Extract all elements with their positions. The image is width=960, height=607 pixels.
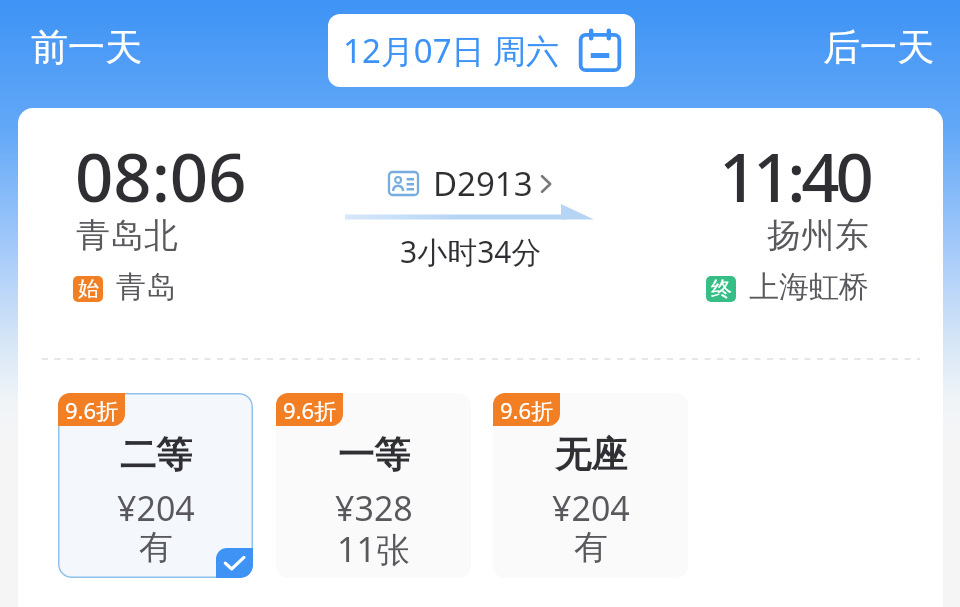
button[interactable]: 无座 [493, 393, 688, 578]
staticText: 08:06 [75, 130, 247, 221]
staticText: 9.6折 [500, 395, 554, 425]
button[interactable]: D2913 [388, 161, 553, 206]
staticText: 终 [711, 276, 732, 302]
button[interactable]: 12月07日 周六 [328, 14, 635, 87]
staticText: 11张 [337, 526, 410, 572]
staticText: 后一天 [823, 24, 934, 71]
staticText: 一等 [338, 432, 410, 477]
staticText: 9.6折 [283, 395, 337, 425]
staticText: 3小时34分 [400, 231, 542, 272]
staticText: 11:40 [719, 130, 870, 221]
staticText: 12月07日 周六 [343, 28, 560, 73]
staticText: 前一天 [31, 24, 142, 71]
button[interactable]: 前一天 [0, 6, 172, 88]
staticText: 无座 [555, 432, 627, 477]
staticText: D2913 [433, 161, 533, 206]
other: Selected [216, 548, 253, 578]
staticText: 9.6折 [65, 395, 119, 425]
staticText: 扬州东 [767, 214, 869, 257]
staticText: 有 [139, 526, 173, 569]
staticText: ¥328 [335, 485, 413, 531]
staticText: 始 [78, 276, 99, 302]
staticText: 青岛 [116, 268, 176, 306]
button[interactable]: 后一天 [792, 6, 960, 88]
staticText: ¥204 [117, 485, 195, 531]
staticText: 上海虹桥 [749, 268, 869, 306]
button[interactable]: 一等 [276, 393, 471, 578]
staticText: ¥204 [552, 485, 630, 531]
staticText: 有 [574, 526, 608, 569]
staticText: 青岛北 [76, 214, 178, 257]
staticText: 二等 [120, 432, 192, 477]
button[interactable]: 二等 [58, 393, 253, 578]
other: Pick date [579, 30, 621, 71]
